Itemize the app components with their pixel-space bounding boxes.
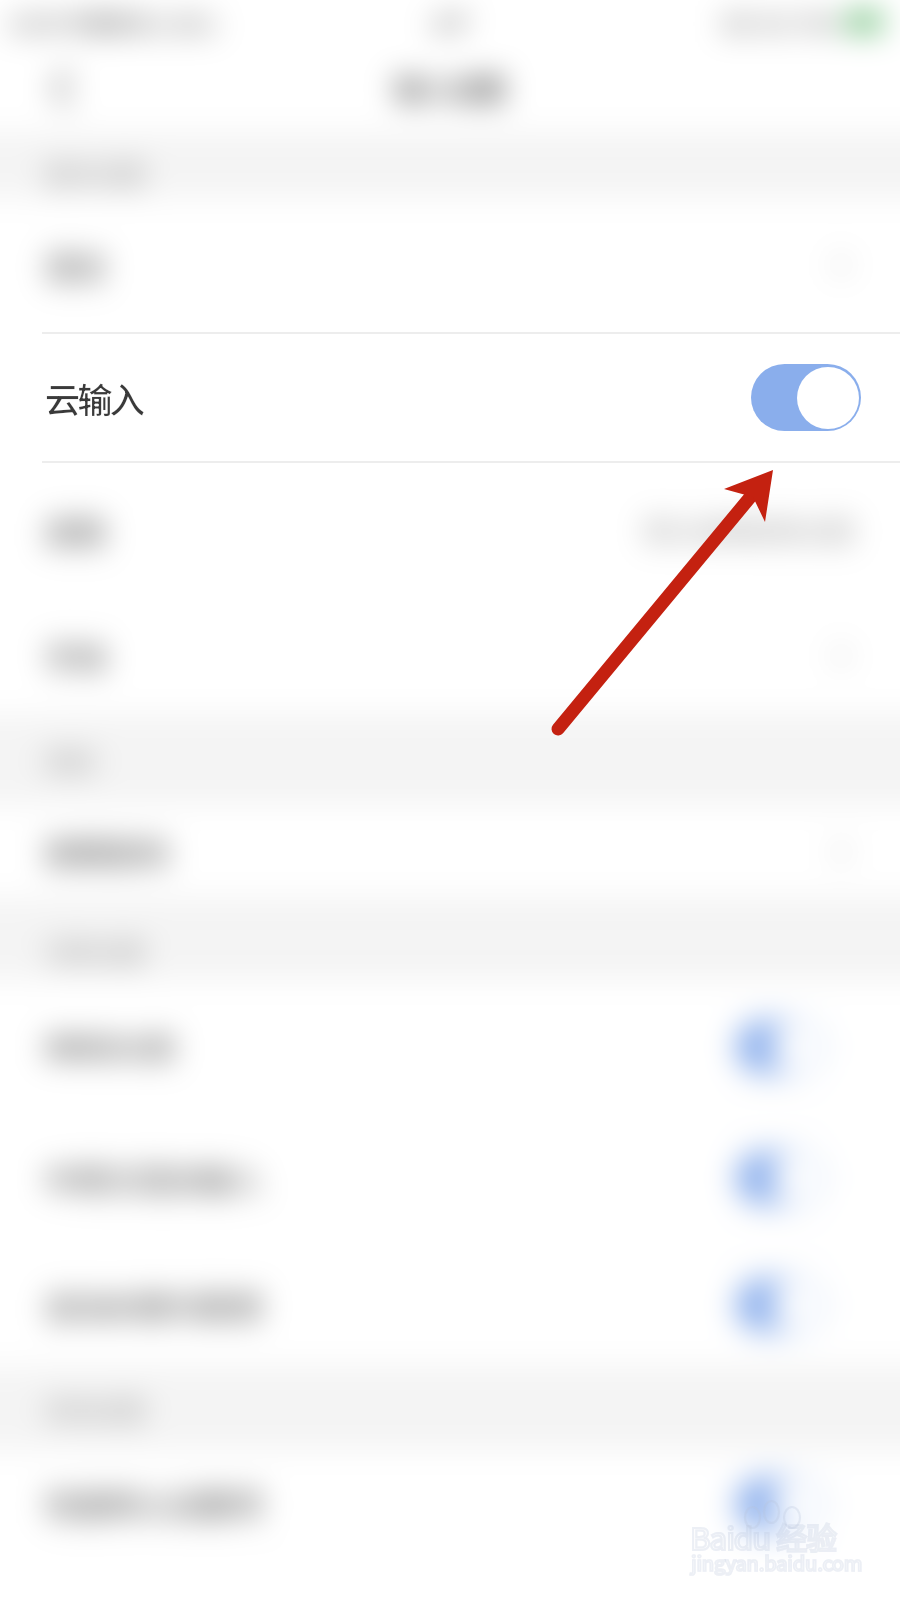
- staticText: 基本设置: [45, 155, 146, 191]
- button[interactable]: 自动纠错与联想: [0, 1243, 900, 1367]
- button[interactable]: 云输入: [0, 332, 900, 463]
- button[interactable]: 语言: [0, 198, 900, 332]
- button[interactable]: Toggle: [736, 371, 824, 425]
- button[interactable]: Toggle: [736, 1020, 824, 1074]
- button[interactable]: 恢复默认设置项: [0, 1450, 900, 1557]
- button[interactable]: 云输入开关: [751, 364, 861, 431]
- staticText: 云输入: [45, 375, 138, 420]
- button[interactable]: 云输入: [0, 332, 900, 463]
- staticText: 按键音效: [45, 829, 169, 874]
- staticText: 14:05 中国移动 1.2K/s: [8, 6, 217, 38]
- staticText: 词库设置: [45, 933, 146, 969]
- staticText: 默认经典皮肤主题: [645, 511, 854, 549]
- staticText: 云输入: [45, 372, 143, 423]
- staticText: 其他设置: [45, 1391, 146, 1427]
- staticText: 自动纠错与联想: [45, 1283, 262, 1328]
- staticText: 皮肤: [45, 508, 107, 553]
- button[interactable]: Toggle: [736, 1278, 824, 1332]
- button[interactable]: 按键音效: [0, 805, 900, 898]
- staticText: 恢复默认设置项: [45, 1481, 262, 1526]
- staticText: 语言: [45, 243, 107, 288]
- staticText: 中英文混合输入: [45, 1156, 262, 1201]
- staticText: jingyan.baidu.com: [691, 1548, 863, 1577]
- staticText: 输入设置: [395, 68, 506, 109]
- button[interactable]: 皮肤: [0, 463, 900, 597]
- staticText: Baidu 经验: [690, 1514, 837, 1559]
- staticText: 76%: [796, 6, 840, 38]
- button[interactable]: 模糊音设置: [0, 980, 900, 1113]
- button[interactable]: 中英文混合输入: [0, 1113, 900, 1243]
- button[interactable]: Toggle: [736, 1477, 824, 1531]
- staticText: 字体: [45, 634, 107, 679]
- staticText: 模糊音设置: [45, 1028, 176, 1066]
- staticText: 高级: [45, 742, 96, 778]
- button[interactable]: 字体: [0, 597, 900, 715]
- button[interactable]: Toggle: [736, 1151, 824, 1205]
